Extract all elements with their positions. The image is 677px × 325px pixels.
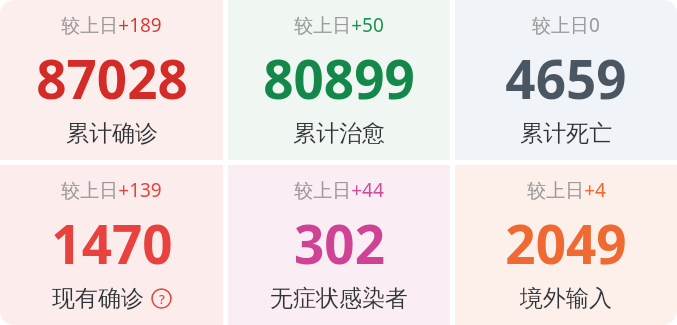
button[interactable]: 较上日+139 [0,165,223,325]
staticText: 较上日+189 [61,12,162,38]
staticText: 1470 [51,207,173,279]
staticText: 4659 [505,42,627,114]
button[interactable]: 较上日+44 [228,165,450,325]
staticText: 较上日+4 [527,177,606,203]
staticText: 87028 [36,42,188,114]
staticText: 累计死亡 [520,119,612,148]
staticText: 累计治愈 [293,119,385,148]
staticText: 较上日0 [532,12,600,38]
staticText: 2049 [505,207,627,279]
button[interactable]: 较上日+189 [0,0,223,160]
staticText: 80899 [263,42,415,114]
button[interactable]: 较上日0 [455,0,677,160]
staticText: 累计确诊 [66,119,158,148]
staticText: 302 [294,207,385,279]
staticText: 较上日+44 [294,177,384,203]
staticText: 无症状感染者 [270,284,408,313]
button[interactable]: 较上日+50 [228,0,450,160]
staticText: 现有确诊 [52,284,144,313]
staticText: 境外输入 [520,284,612,313]
staticText: ? [159,290,165,308]
staticText: 较上日+50 [294,12,384,38]
button[interactable]: Help about current confirmed [151,288,172,309]
button[interactable]: 较上日+4 [455,165,677,325]
staticText: 较上日+139 [61,177,162,203]
